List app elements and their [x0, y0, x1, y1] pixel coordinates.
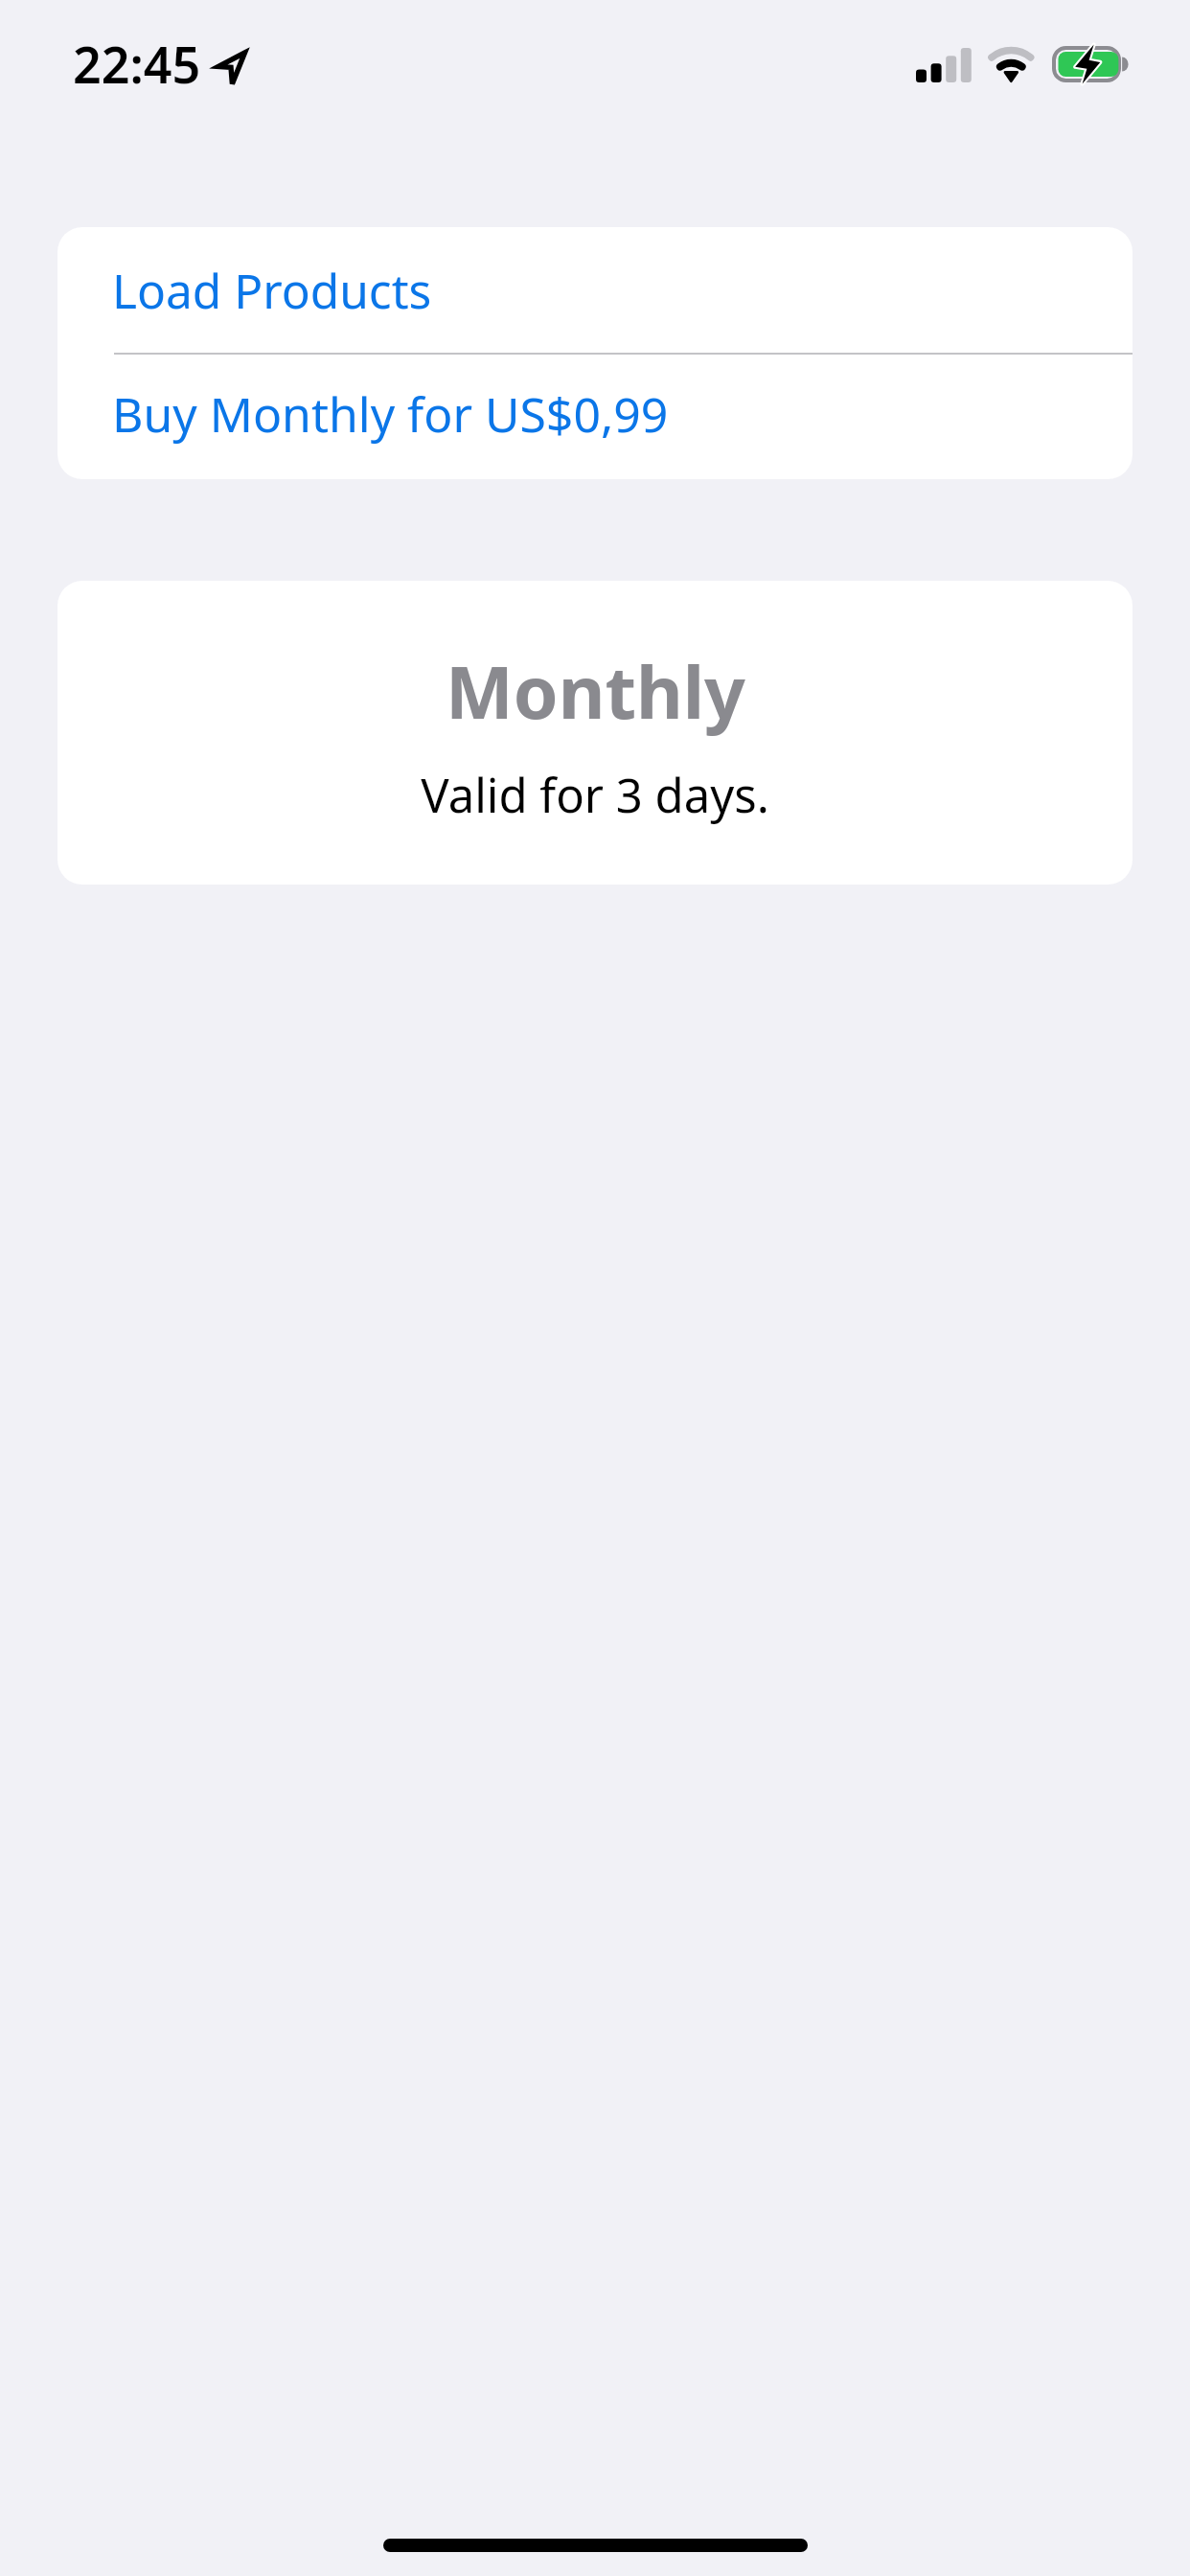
staticText: Monthly: [446, 642, 745, 740]
other: Location services in use: [207, 43, 253, 89]
staticText: Buy Monthly for US$0,99: [112, 381, 669, 447]
other: Wi-Fi: [988, 46, 1034, 81]
other: Cellular signal: 2 of 4 bars: [916, 48, 972, 82]
staticText: Load Products: [112, 258, 432, 323]
other: Home indicator: [383, 2539, 808, 2552]
staticText: 22:45: [73, 30, 201, 98]
button[interactable]: Load Products: [57, 227, 1133, 353]
staticText: Valid for 3 days.: [421, 763, 769, 827]
other: Battery charging: [1052, 46, 1129, 82]
button[interactable]: Buy Monthly for US$0,99: [57, 355, 1133, 479]
